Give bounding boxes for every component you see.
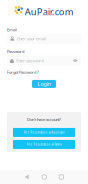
button[interactable]: Free Registration as Applicant	[13, 128, 75, 137]
staticText: AuPair.com	[25, 5, 74, 18]
button[interactable]: Forgot Password ?	[7, 70, 39, 75]
staticText: Email	[7, 27, 17, 32]
button[interactable]: Back	[22, 172, 31, 182]
button[interactable]: Free Registration as Family	[13, 140, 75, 149]
button[interactable]: Enter your email	[7, 34, 81, 44]
staticText: Login	[37, 80, 50, 87]
staticText: Free Registration as Applicant	[23, 131, 64, 134]
staticText: Don't have account?	[27, 117, 61, 122]
button[interactable]: Login	[32, 80, 56, 88]
staticText: Enter your email	[17, 36, 46, 41]
button[interactable]: Home	[40, 173, 49, 181]
staticText: safe and easy	[37, 12, 54, 16]
staticText: Free Registration as Family	[26, 143, 61, 146]
staticText: Forgot Password ?	[7, 70, 39, 75]
button[interactable]: Enter password	[7, 56, 81, 66]
staticText: Password	[7, 49, 24, 54]
staticText: Enter password	[16, 58, 43, 63]
button[interactable]: Recents	[57, 173, 65, 181]
